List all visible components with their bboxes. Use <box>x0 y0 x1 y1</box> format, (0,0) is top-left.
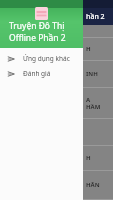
button[interactable]: INH <box>0 61 113 87</box>
staticText: Truyện Đô Thị <box>9 20 65 32</box>
staticText: A HẦM <box>86 96 101 111</box>
button[interactable]: H <box>0 146 113 170</box>
button[interactable]: HÂN <box>0 171 113 199</box>
other: Ứng dụng khác <box>6 54 15 63</box>
other: Đánh giá <box>6 69 15 78</box>
staticText: INH <box>86 70 98 78</box>
staticText: Ứng dụng khác <box>23 54 70 63</box>
staticText: H <box>86 45 91 53</box>
staticText: H <box>86 154 91 162</box>
button[interactable]: Đánh giá <box>0 66 83 81</box>
staticText: Offline Phần 2 <box>9 32 66 44</box>
button[interactable]: A HẦM <box>0 88 113 118</box>
staticText: Đánh giá <box>23 69 51 78</box>
staticText: hần 2 <box>86 12 105 22</box>
button[interactable]: Ứng dụng khác <box>0 51 83 66</box>
button[interactable]: H <box>0 38 113 60</box>
staticText: HÂN <box>86 181 100 189</box>
button[interactable] <box>0 25 113 37</box>
button[interactable] <box>0 119 113 145</box>
